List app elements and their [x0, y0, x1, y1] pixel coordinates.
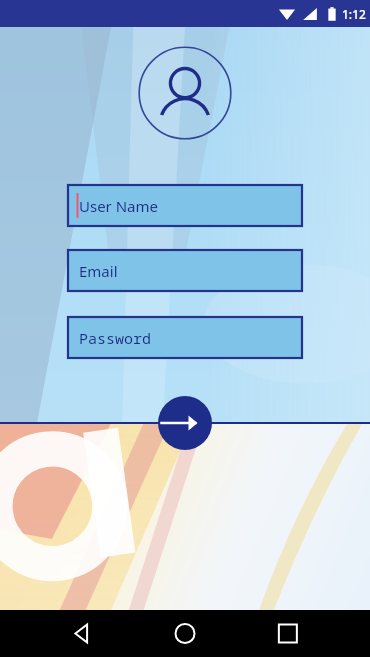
staticText: 1:12 [342, 6, 366, 22]
staticText: Email [79, 261, 118, 281]
button[interactable]: Email [68, 250, 302, 291]
button[interactable]: User Name [68, 185, 302, 226]
button[interactable]: Submit [158, 396, 212, 450]
staticText: Password [79, 328, 152, 348]
button[interactable]: Profile avatar [138, 46, 232, 140]
staticText: User Name [79, 196, 159, 216]
button[interactable]: Password [68, 317, 302, 358]
